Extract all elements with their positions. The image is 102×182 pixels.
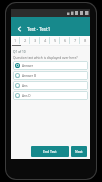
staticText: 1 xyxy=(14,38,17,43)
button[interactable]: Next xyxy=(71,146,87,157)
staticText: 8 xyxy=(84,38,87,43)
staticText: 6 xyxy=(64,38,67,43)
staticText: Next xyxy=(75,149,83,154)
button[interactable]: Answer xyxy=(13,61,88,70)
button[interactable]: Answer B xyxy=(13,71,88,80)
staticText: Answer xyxy=(22,64,34,68)
button[interactable]: 1 xyxy=(11,36,20,45)
staticText: 4 xyxy=(44,38,47,43)
button[interactable]: Ans xyxy=(13,81,88,90)
staticText: 2 xyxy=(24,38,27,43)
button[interactable]: Back xyxy=(13,23,24,34)
button[interactable]: End Test xyxy=(31,146,69,157)
button[interactable]: 6 xyxy=(60,36,70,45)
staticText: 5 xyxy=(54,38,57,43)
button[interactable]: 4 xyxy=(40,36,50,45)
button[interactable]: 3 xyxy=(30,36,40,45)
staticText: Question text which is displayed over he… xyxy=(13,56,78,60)
staticText: 7 xyxy=(74,38,77,43)
staticText: Q1 of 10 xyxy=(13,50,26,54)
staticText: Answer B xyxy=(22,74,37,78)
staticText: Ans xyxy=(22,84,28,88)
staticText: Ans D xyxy=(22,94,31,98)
staticText: End Test xyxy=(43,149,57,154)
staticText: 3 xyxy=(34,38,37,43)
button[interactable]: Ans D xyxy=(13,91,88,100)
button[interactable]: 8 xyxy=(80,36,90,45)
staticText: Test - Test1 xyxy=(27,26,51,32)
button[interactable]: 7 xyxy=(70,36,80,45)
button[interactable]: 2 xyxy=(20,36,30,45)
button[interactable]: 5 xyxy=(50,36,60,45)
